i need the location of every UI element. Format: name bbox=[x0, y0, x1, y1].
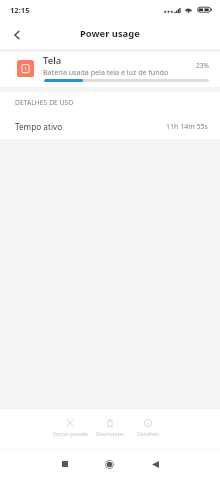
button[interactable]: Back bbox=[143, 452, 167, 476]
button[interactable]: Desinstalar bbox=[89, 419, 131, 437]
staticText: 12:15 bbox=[10, 5, 30, 15]
staticText: Tela bbox=[43, 54, 62, 67]
button[interactable]: Tempo ativo bbox=[0, 114, 220, 139]
button[interactable]: Detalhes bbox=[127, 419, 169, 437]
staticText: Desinstalar bbox=[96, 430, 124, 437]
button[interactable]: Home bbox=[97, 452, 121, 476]
staticText: 23% bbox=[196, 61, 210, 70]
staticText: 11h 14m 55s bbox=[166, 122, 208, 132]
staticText: Detalhes bbox=[137, 430, 159, 437]
staticText: Tempo ativo bbox=[15, 121, 63, 132]
staticText: Bateria usada pela tela e luz de fundo bbox=[43, 67, 169, 77]
button[interactable]: Back bbox=[3, 21, 31, 49]
staticText: Power usage bbox=[80, 27, 140, 40]
staticText: DETALHES DE USO bbox=[15, 98, 74, 107]
staticText: Forçar parada bbox=[53, 430, 88, 437]
button[interactable]: Tela bbox=[0, 52, 220, 87]
button[interactable]: Forçar parada bbox=[49, 419, 91, 437]
button[interactable]: Recents bbox=[53, 452, 77, 476]
